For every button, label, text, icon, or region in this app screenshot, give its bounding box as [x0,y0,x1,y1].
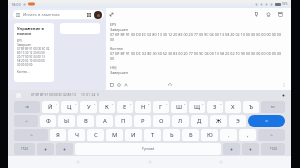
staticText: 7 [166,102,168,105]
button[interactable]: Н [135,101,151,113]
button[interactable]: Й [42,101,59,113]
button[interactable]: Упряжение в полосе [14,23,54,82]
staticText: 20 77 00 9C 04 00 13 [17,55,45,59]
button[interactable]: Ф [40,115,56,127]
button[interactable]: ?123 [261,143,285,155]
button[interactable]: Щ [189,101,205,113]
staticText: EPS [17,39,22,43]
button[interactable]: Г [153,101,169,113]
staticText: . [228,131,230,139]
button[interactable]: Х [225,101,241,113]
button[interactable]: Voice input [56,143,73,155]
button[interactable]: ?123 [14,143,35,155]
button[interactable]: А [96,115,113,127]
button[interactable]: Ч [68,129,85,141]
button[interactable]: Enter [248,115,285,127]
button[interactable]: Reminder [266,12,271,17]
button[interactable]: О [153,115,170,127]
staticText: ?123 [21,147,28,151]
button[interactable]: Ъ [243,101,259,113]
staticText: Русский [142,147,155,151]
button[interactable]: В [77,115,94,127]
button[interactable]: More options [282,83,286,87]
button[interactable]: Backspace [261,101,285,113]
button[interactable]: Э [229,115,246,127]
staticText: 07 BF BF 91 00 DC 02 80 30 30 52 30 83 0… [110,51,286,61]
button[interactable]: Home [148,160,152,164]
staticText: Ь [170,131,174,139]
staticText: Костюк [110,46,123,51]
button[interactable]: Undo [168,83,172,87]
button[interactable]: Русский [75,143,221,155]
button[interactable]: More [282,94,285,97]
staticText: 13 01 24 5 [81,93,99,97]
staticText: Ъ [249,103,254,111]
button[interactable]: Р [134,115,151,127]
button[interactable]: Add to note [110,83,114,87]
button[interactable]: К [99,101,115,113]
button[interactable]: Ш [171,101,187,113]
staticText: 80 13 30 12 20 83 00 [17,51,45,55]
staticText: З [213,103,217,111]
staticText: 07 BF BF 91 00 D0 EC 02 80 13 [31,93,76,97]
button[interactable]: Pin note [254,12,259,17]
staticText: Ю [207,131,213,139]
button[interactable]: Emoji [37,143,54,155]
staticText: Завершен [17,43,32,47]
button[interactable]: Recent apps [219,160,223,164]
staticText: 00 00 00 00 [17,63,33,67]
button[interactable]: Я [50,129,66,141]
button[interactable]: Л [172,115,189,127]
staticText: ?123 [270,147,277,151]
button[interactable]: Т [144,129,161,141]
button[interactable]: Archive [278,12,283,17]
button[interactable]: Period [242,143,259,155]
staticText: 9 [202,102,204,105]
button[interactable]: Shift [258,129,285,141]
staticText: 1 [56,102,58,105]
staticText: У [87,103,91,111]
button[interactable]: Б [182,129,199,141]
staticText: 18:03 [11,2,21,7]
staticText: К [105,103,109,111]
button[interactable]: Open navigation menu [13,10,104,19]
button[interactable]: Caps lock [14,115,38,127]
button[interactable]: Note options [124,83,128,87]
button[interactable]: Е [117,101,133,113]
button[interactable]: П [115,115,132,127]
button[interactable]: Ь [163,129,180,141]
button[interactable]: Comma [223,143,240,155]
button[interactable]: Ж [210,115,227,127]
button[interactable]: Back [76,160,80,164]
button[interactable]: И [125,129,142,141]
button[interactable]: Expand note [109,12,114,17]
staticText: П [121,117,126,125]
button[interactable]: Ц [61,101,78,113]
staticText: Л [178,117,183,125]
staticText: Ы [64,117,70,125]
button[interactable]: Ы [58,115,75,127]
button[interactable]: Account [94,11,102,19]
button[interactable]: З [207,101,223,113]
staticText: Ж [216,117,222,125]
button[interactable]: Tab [14,101,40,113]
staticText: 93% [282,2,288,6]
button[interactable]: , [239,129,256,141]
button[interactable]: М [106,129,123,141]
button[interactable]: У [80,101,97,113]
other: Open navigation menu [16,13,20,17]
button[interactable]: . [220,129,237,141]
button[interactable]: Switch to grid view [87,13,91,17]
staticText: 07 BF BF 91 00 D0 EC 02 80 13 30 12 20 8… [110,32,286,42]
staticText: Х [231,103,235,111]
staticText: Е [123,103,127,111]
button[interactable]: Ю [201,129,218,141]
button[interactable]: Д [191,115,208,127]
button[interactable]: Change colour [117,83,121,87]
staticText: 58 20 02 10 00 00 00 [17,59,45,63]
button[interactable]: С [87,129,104,141]
staticText: Д [197,117,202,125]
